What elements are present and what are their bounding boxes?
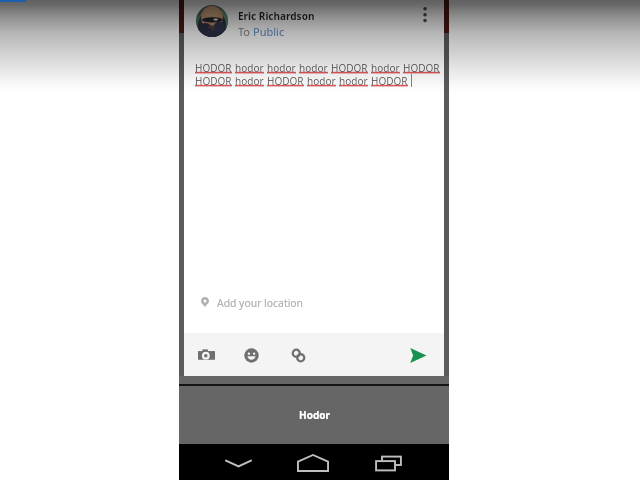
staticText: HODOR <box>371 74 408 87</box>
staticText: hodor <box>299 61 328 74</box>
staticText: HODOR <box>195 61 232 74</box>
staticText: hodor <box>267 61 296 74</box>
staticText: Add your location <box>217 296 304 310</box>
button[interactable]: Home <box>281 444 345 480</box>
staticText: hodor <box>339 74 368 87</box>
staticText: HODOR <box>267 74 304 87</box>
staticText: HODOR <box>403 61 440 74</box>
button[interactable]: Add photo <box>193 342 219 368</box>
staticText: HODOR <box>195 74 232 87</box>
staticText: hodor <box>371 61 400 74</box>
button[interactable]: Add emoji <box>238 342 264 368</box>
staticText: hodor <box>235 61 264 74</box>
staticText: HODOR <box>331 61 368 74</box>
staticText: hodor <box>235 74 264 87</box>
staticText: Eric Richardson <box>238 9 315 23</box>
staticText: To <box>238 24 253 39</box>
button[interactable]: Add link <box>285 342 311 368</box>
button[interactable]: Recent apps <box>359 444 418 480</box>
button[interactable]: Hide keyboard <box>210 444 267 480</box>
button[interactable]: Send <box>403 340 433 370</box>
button[interactable]: Add your location <box>184 289 444 333</box>
staticText: hodor <box>307 74 336 87</box>
staticText: Hodor <box>299 408 330 422</box>
staticText: Public <box>253 24 285 39</box>
button[interactable]: More options <box>412 6 438 36</box>
